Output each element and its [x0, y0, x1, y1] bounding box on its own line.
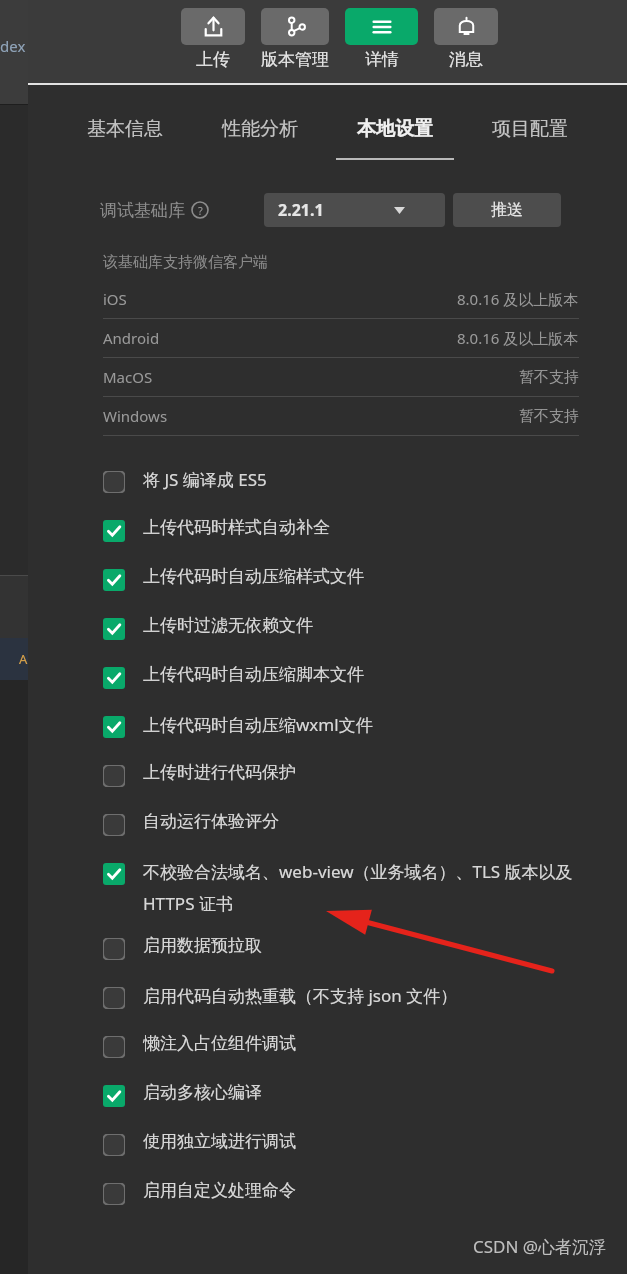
- staticText: 上传: [196, 49, 230, 70]
- staticText: Windows: [103, 406, 168, 426]
- staticText: 自动运行体验评分: [143, 811, 603, 832]
- staticText: 推送: [491, 200, 523, 220]
- staticText: 暂不支持: [519, 368, 579, 387]
- staticText: MacOS: [103, 367, 153, 387]
- button[interactable]: 懒注入占位组件调试: [28, 1009, 627, 1058]
- button[interactable]: 启动多核心编译: [28, 1058, 627, 1107]
- button[interactable]: 详情: [345, 8, 418, 70]
- staticText: 调试基础库: [100, 200, 185, 221]
- staticText: 消息: [449, 49, 483, 70]
- staticText: 上传时过滤无依赖文件: [143, 615, 603, 636]
- button[interactable]: 上传时过滤无依赖文件: [28, 591, 627, 640]
- staticText: dex: [0, 36, 26, 56]
- staticText: 8.0.16 及以上版本: [457, 289, 579, 309]
- button[interactable]: 上传代码时自动压缩样式文件: [28, 542, 627, 591]
- button[interactable]: 版本管理: [261, 8, 329, 70]
- staticText: CSDN @心者沉浮: [473, 1235, 607, 1258]
- button[interactable]: 上传: [181, 8, 245, 70]
- staticText: Android: [103, 328, 160, 348]
- staticText: A: [19, 650, 28, 668]
- staticText: 上传代码时自动压缩脚本文件: [143, 664, 603, 685]
- button[interactable]: 2.21.1: [264, 193, 445, 227]
- button[interactable]: 启用自定义处理命令: [28, 1156, 627, 1205]
- staticText: 暂不支持: [519, 407, 579, 426]
- button[interactable]: 不校验合法域名、web-view（业务域名）、TLS 版本以及 HTTPS 证书: [28, 836, 627, 915]
- staticText: 性能分析: [222, 117, 298, 141]
- staticText: 版本管理: [261, 49, 329, 70]
- button[interactable]: 启用数据预拉取: [28, 915, 627, 960]
- staticText: 启用代码自动热重载（不支持 json 文件）: [143, 984, 603, 1007]
- button[interactable]: 使用独立域进行调试: [28, 1107, 627, 1156]
- button[interactable]: 基本信息: [58, 85, 192, 158]
- button[interactable]: 项目配置: [462, 85, 597, 158]
- button[interactable]: 本地设置: [327, 85, 462, 160]
- staticText: ?: [198, 203, 203, 218]
- staticText: 该基础库支持微信客户端: [103, 253, 268, 272]
- staticText: 详情: [365, 49, 399, 70]
- staticText: 上传代码时样式自动补全: [143, 517, 603, 538]
- button[interactable]: 推送: [453, 193, 561, 227]
- staticText: 启用自定义处理命令: [143, 1180, 603, 1201]
- staticText: 不校验合法域名、web-view（业务域名）、TLS 版本以及 HTTPS 证书: [143, 860, 593, 915]
- staticText: 上传时进行代码保护: [143, 762, 603, 783]
- button[interactable]: 上传代码时样式自动补全: [28, 493, 627, 542]
- staticText: 2.21.1: [278, 199, 324, 221]
- button[interactable]: 上传代码时自动压缩wxml文件: [28, 689, 627, 738]
- staticText: 懒注入占位组件调试: [143, 1033, 603, 1054]
- button[interactable]: 上传代码时自动压缩脚本文件: [28, 640, 627, 689]
- staticText: 上传代码时自动压缩样式文件: [143, 566, 603, 587]
- staticText: 基本信息: [87, 117, 163, 141]
- button[interactable]: 上传时进行代码保护: [28, 738, 627, 787]
- staticText: 启用数据预拉取: [143, 935, 603, 956]
- button[interactable]: 自动运行体验评分: [28, 787, 627, 836]
- staticText: 8.0.16 及以上版本: [457, 328, 579, 348]
- staticText: 上传代码时自动压缩wxml文件: [143, 713, 603, 736]
- staticText: 使用独立域进行调试: [143, 1131, 603, 1152]
- staticText: 将 JS 编译成 ES5: [143, 468, 603, 491]
- button[interactable]: 将 JS 编译成 ES5: [28, 468, 627, 493]
- button[interactable]: 性能分析: [192, 85, 327, 158]
- staticText: iOS: [103, 289, 127, 309]
- button[interactable]: 消息: [434, 8, 498, 70]
- staticText: 启动多核心编译: [143, 1082, 603, 1103]
- button[interactable]: 启用代码自动热重载（不支持 json 文件）: [28, 960, 627, 1009]
- staticText: 本地设置: [357, 117, 433, 141]
- staticText: 项目配置: [492, 117, 568, 141]
